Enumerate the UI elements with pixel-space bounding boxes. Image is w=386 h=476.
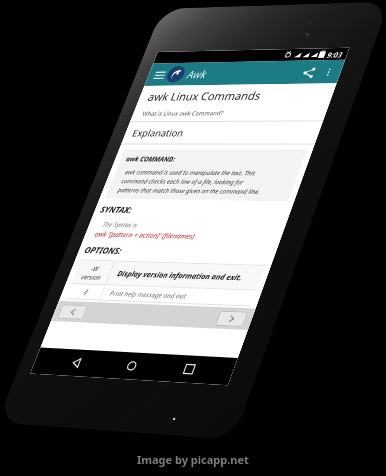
staticText: -W bbox=[90, 264, 100, 273]
staticText: awk '[pattern + action]' (filenames) bbox=[94, 229, 197, 240]
button[interactable]: Share bbox=[294, 62, 323, 83]
button[interactable]: Recents bbox=[170, 355, 209, 384]
staticText: OPTIONS: bbox=[83, 244, 124, 256]
staticText: The Syntax is bbox=[101, 220, 139, 229]
button[interactable]: Next bbox=[215, 311, 248, 327]
staticText: version bbox=[80, 272, 102, 281]
staticText: Awk bbox=[185, 67, 210, 82]
staticText: SYNTAX: bbox=[99, 203, 134, 215]
staticText: awk Linux Commands bbox=[146, 88, 264, 104]
staticText: awk COMMAND: bbox=[125, 154, 178, 163]
staticText: What is Linux awk Command? bbox=[141, 109, 225, 117]
button[interactable]: Back bbox=[57, 349, 95, 377]
button[interactable]: Previous bbox=[57, 304, 88, 320]
staticText: Image by picapp.net bbox=[137, 452, 249, 467]
staticText: Print help message and exit bbox=[108, 289, 189, 300]
staticText: 9:03 bbox=[326, 49, 344, 59]
staticText: -f bbox=[82, 288, 89, 296]
button[interactable]: Menu bbox=[150, 68, 169, 82]
button[interactable]: More options bbox=[316, 63, 341, 81]
staticText: Display version information and exit. bbox=[116, 268, 244, 283]
staticText: Explanation bbox=[130, 127, 186, 140]
button[interactable]: Home bbox=[112, 352, 151, 380]
staticText: awk command is used to manipulate the te… bbox=[117, 168, 269, 196]
